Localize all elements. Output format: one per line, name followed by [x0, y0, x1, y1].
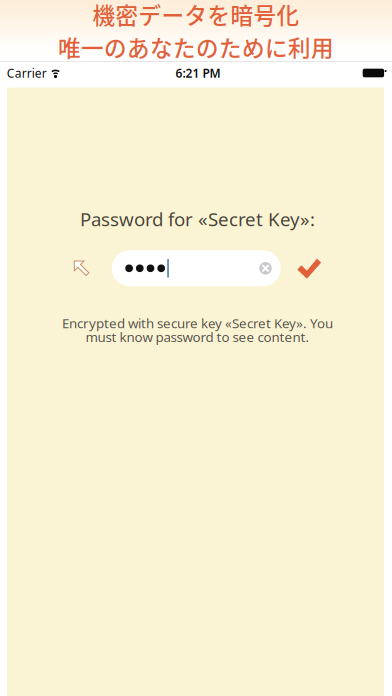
staticText: Password for «Secret Key»:	[80, 206, 315, 231]
button[interactable]: Paste password	[73, 260, 90, 276]
staticText: 唯一のあなたのために利用	[58, 30, 334, 63]
staticText: must know password to see content.	[85, 328, 309, 346]
staticText: Encrypted with secure key «Secret Key». …	[62, 314, 333, 332]
button[interactable]: Confirm password	[297, 258, 322, 279]
staticText: 6:21 PM	[175, 65, 220, 81]
staticText: Carrier	[7, 65, 47, 81]
staticText: 機密データを暗号化	[92, 0, 299, 30]
